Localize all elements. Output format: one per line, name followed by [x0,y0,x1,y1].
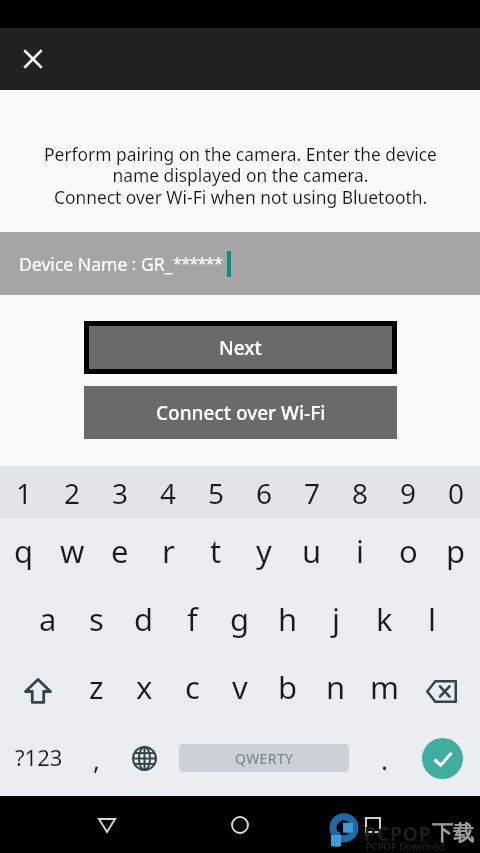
button[interactable]: Home [210,796,270,853]
staticText: k [376,598,393,640]
staticText: Device Name [19,252,128,276]
staticText: v [232,666,248,708]
button[interactable]: m [360,655,408,723]
staticText: b [278,666,298,708]
button[interactable]: 4 [144,466,192,518]
staticText: s [89,598,104,640]
staticText: w [60,530,85,572]
button[interactable]: Change keyboard language [120,723,168,796]
button[interactable]: Backspace [408,655,480,723]
button[interactable]: y [240,518,288,587]
button[interactable]: ?123 [0,723,72,796]
staticText: d [134,598,154,640]
staticText: r [162,530,175,572]
button[interactable]: t [192,518,240,587]
button[interactable]: 7 [288,466,336,518]
staticText: ?123 [15,742,63,772]
staticText: n [326,666,346,708]
staticText: PCPOP [364,821,432,847]
staticText: PCPOP Download [366,840,445,853]
button[interactable]: l [408,587,456,655]
button[interactable]: 2 [48,466,96,518]
staticText: q [14,530,34,572]
staticText: e [111,530,129,572]
staticText: 5 [208,474,225,512]
button[interactable]: p [432,518,480,587]
button[interactable]: x [120,655,168,723]
staticText: m [370,666,399,708]
button[interactable]: 5 [192,466,240,518]
staticText: i [356,530,364,572]
button[interactable]: v [216,655,264,723]
button[interactable]: u [288,518,336,587]
staticText: 4 [160,474,177,512]
button[interactable]: f [168,587,216,655]
button[interactable]: k [360,587,408,655]
staticText: g [230,598,250,640]
button[interactable]: Shift [0,655,72,723]
staticText: 9 [400,474,417,512]
button[interactable]: i [336,518,384,587]
staticText: GR_ [141,252,173,276]
button[interactable]: c [168,655,216,723]
staticText: 8 [352,474,369,512]
staticText: c [185,666,200,708]
staticText: Next [219,335,262,361]
staticText: j [332,598,340,640]
button[interactable]: . [360,723,408,796]
staticText: . [381,742,388,777]
staticText: x [136,666,153,708]
button[interactable]: 6 [240,466,288,518]
staticText: Perform pairing on the camera. Enter the… [44,142,437,209]
staticText: y [256,530,272,572]
button[interactable]: b [264,655,312,723]
button[interactable]: 9 [384,466,432,518]
staticText: QWERTY [235,749,294,768]
staticText: 3 [112,474,129,512]
button[interactable]: 0 [432,466,480,518]
button[interactable]: e [96,518,144,587]
button[interactable]: g [216,587,264,655]
staticText: 7 [304,474,321,512]
staticText: , [93,742,100,777]
button[interactable]: a [24,587,72,655]
staticText: o [399,530,418,572]
button[interactable]: q [0,518,48,587]
button[interactable]: s [72,587,120,655]
staticText: 下载 [432,820,474,846]
button[interactable]: Connect over Wi-Fi [84,386,397,439]
button[interactable]: o [384,518,432,587]
button[interactable]: w [48,518,96,587]
button[interactable]: 1 [0,466,48,518]
staticText: h [278,598,298,640]
staticText: 6 [256,474,273,512]
button[interactable]: z [72,655,120,723]
staticText: f [187,598,198,640]
button[interactable]: r [144,518,192,587]
staticText: 1 [16,474,33,512]
button[interactable]: j [312,587,360,655]
button[interactable]: Done [408,723,480,796]
staticText: z [89,666,104,708]
staticText: 2 [64,474,81,512]
staticText: ： [125,253,143,275]
button[interactable]: , [72,723,120,796]
button[interactable]: n [312,655,360,723]
button[interactable]: Close [11,37,55,81]
staticText: Connect over Wi-Fi [156,400,326,426]
staticText: ****** [173,252,223,274]
staticText: 0 [448,474,465,512]
button[interactable]: 8 [336,466,384,518]
button[interactable]: d [120,587,168,655]
button[interactable]: h [264,587,312,655]
button[interactable]: QWERTY [179,744,349,772]
staticText: a [39,598,57,640]
button[interactable]: Next [89,326,392,369]
staticText: p [446,530,466,572]
button[interactable]: Back [77,796,137,853]
staticText: u [302,530,322,572]
button[interactable]: 3 [96,466,144,518]
button[interactable]: Recent apps [343,796,403,853]
staticText: l [428,598,436,640]
staticText: t [210,530,222,572]
